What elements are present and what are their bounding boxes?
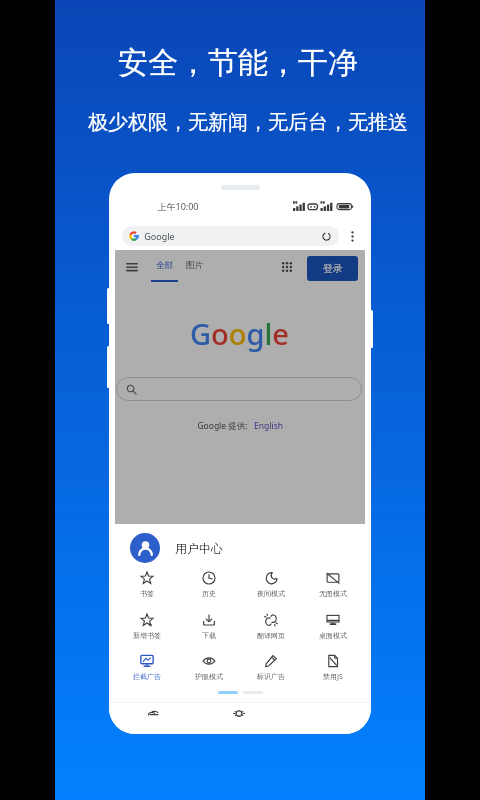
staticText: 用户中心 bbox=[175, 541, 223, 556]
staticText: Google bbox=[144, 230, 175, 242]
staticText: 上午10:00 bbox=[157, 200, 199, 212]
staticText: Google 提供: bbox=[197, 420, 248, 432]
staticText: 禁用JS bbox=[323, 672, 343, 682]
staticText: 下载 bbox=[202, 631, 216, 640]
staticText: 护眼模式 bbox=[195, 672, 223, 681]
staticText: 登录 bbox=[323, 262, 343, 275]
button[interactable]: 桌面模式 bbox=[302, 606, 364, 639]
button[interactable]: 新增书签 bbox=[116, 606, 178, 639]
staticText: 无图模式 bbox=[319, 589, 347, 598]
staticText: 拦截广告 bbox=[133, 672, 161, 681]
staticText: Google bbox=[190, 314, 289, 353]
staticText: 标识广告 bbox=[257, 672, 285, 681]
button[interactable]: Google apps bbox=[277, 257, 297, 277]
button[interactable]: 无图模式 bbox=[302, 564, 364, 597]
button[interactable]: 夜间模式 bbox=[240, 564, 302, 597]
button[interactable]: 护眼模式 bbox=[178, 647, 240, 680]
staticText: 历史 bbox=[202, 589, 216, 598]
button[interactable]: 下载 bbox=[178, 606, 240, 639]
button[interactable]: 翻译网页 bbox=[240, 606, 302, 639]
button[interactable]: Google bbox=[122, 226, 339, 246]
staticText: 新增书签 bbox=[133, 631, 161, 640]
button[interactable]: English bbox=[254, 420, 283, 432]
button[interactable]: 禁用JS bbox=[302, 647, 364, 680]
staticText: 极少权限，无新闻，无后台，无推送 bbox=[88, 110, 408, 135]
button[interactable]: 全部 bbox=[149, 254, 179, 284]
staticText: 夜间模式 bbox=[257, 589, 285, 598]
button[interactable]: 登录 bbox=[307, 256, 358, 281]
button[interactable]: 用户中心 bbox=[109, 530, 371, 566]
button[interactable]: More options bbox=[344, 226, 360, 246]
button[interactable]: 图片 bbox=[183, 254, 206, 276]
staticText: 图片 bbox=[186, 260, 203, 271]
button[interactable]: 拦截广告 bbox=[116, 647, 178, 680]
button[interactable] bbox=[116, 377, 362, 401]
staticText: 书签 bbox=[140, 589, 154, 598]
staticText: 安全，节能，干净 bbox=[118, 44, 358, 82]
staticText: 全部 bbox=[156, 260, 173, 271]
button[interactable]: Menu bbox=[122, 257, 142, 277]
staticText: 翻译网页 bbox=[257, 631, 285, 640]
button[interactable]: 历史 bbox=[178, 564, 240, 597]
button[interactable]: 书签 bbox=[116, 564, 178, 597]
staticText: 桌面模式 bbox=[319, 631, 347, 640]
button[interactable]: 标识广告 bbox=[240, 647, 302, 680]
